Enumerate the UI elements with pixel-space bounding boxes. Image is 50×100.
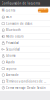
staticText: Ayuda (6, 60, 14, 64)
staticText: Términos y condiciones de uso (6, 80, 47, 83)
button[interactable]: Modo oscuro (0, 33, 50, 40)
button[interactable]: Conexión de datos (0, 21, 50, 27)
staticText: Acerca de (6, 73, 19, 77)
button[interactable]: Ayuda (0, 59, 50, 65)
staticText: Seguridad (6, 48, 20, 51)
staticText: Bluetooth (6, 28, 21, 32)
button[interactable]: Mi cuenta (0, 7, 50, 14)
staticText: Mi cuenta (2, 9, 15, 12)
staticText: Soporte (6, 67, 17, 70)
button[interactable]: Cerrar mensaje Desde Sesión (0, 85, 50, 91)
staticText: Modo oscuro (6, 35, 24, 38)
button[interactable]: Wi-Fi (0, 14, 50, 21)
button[interactable]: Seguridad (0, 46, 50, 53)
button[interactable]: Privacidad (0, 40, 50, 46)
staticText: Privacidad (6, 41, 19, 45)
staticText: Conexión de datos (6, 22, 32, 25)
button[interactable]: Acerca de (0, 72, 50, 78)
button[interactable]: Bluetooth (0, 27, 50, 33)
staticText: Wi-Fi (6, 15, 12, 19)
button[interactable]: Idioma (0, 53, 50, 59)
staticText: Configuración de la cuenta (2, 2, 40, 5)
button[interactable]: Soporte (0, 66, 50, 72)
staticText: Idioma (6, 54, 15, 57)
button[interactable]: Términos y condiciones de uso (0, 78, 50, 85)
staticText: Cerrar mensaje Desde Sesión (6, 86, 46, 90)
staticText: Actualizar (38, 7, 48, 14)
